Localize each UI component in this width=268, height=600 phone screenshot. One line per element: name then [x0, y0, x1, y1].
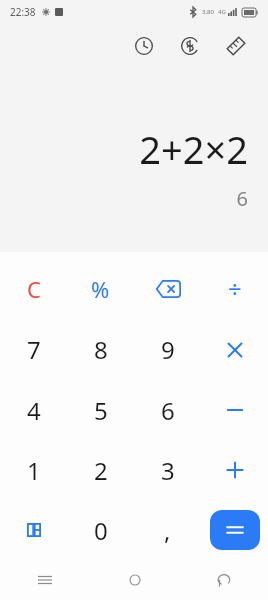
- staticText: 2+2×2: [0, 123, 248, 175]
- button[interactable]: 0: [67, 500, 134, 560]
- button[interactable]: [210, 510, 260, 550]
- button[interactable]: ,: [134, 500, 201, 560]
- button[interactable]: 6: [134, 380, 201, 440]
- button[interactable]: History: [126, 28, 162, 64]
- button[interactable]: 5: [67, 380, 134, 440]
- staticText: 0: [94, 514, 108, 547]
- staticText: 3: [161, 454, 175, 487]
- staticText: 3,80: [202, 8, 214, 16]
- staticText: ,: [164, 514, 171, 547]
- button[interactable]: Scientific mode: [0, 500, 67, 560]
- button[interactable]: Unit converter: [218, 28, 254, 64]
- button[interactable]: Backspace: [134, 258, 201, 319]
- staticText: 8: [94, 333, 108, 366]
- button[interactable]: Minus: [201, 380, 268, 440]
- button[interactable]: Home: [90, 560, 179, 600]
- button[interactable]: ÷: [201, 258, 268, 319]
- button[interactable]: 4: [0, 380, 67, 440]
- button[interactable]: 7: [0, 319, 67, 380]
- staticText: 5: [94, 394, 108, 427]
- staticText: 22:38: [10, 5, 36, 19]
- staticText: 7: [27, 333, 41, 366]
- button[interactable]: 2: [67, 440, 134, 500]
- button[interactable]: 8: [67, 319, 134, 380]
- button[interactable]: 3: [134, 440, 201, 500]
- staticText: 1: [27, 454, 41, 487]
- staticText: C: [27, 274, 41, 304]
- staticText: ÷: [228, 272, 242, 305]
- staticText: 6: [0, 185, 248, 212]
- button[interactable]: Back: [179, 560, 268, 600]
- button[interactable]: Multiply: [201, 319, 268, 380]
- button[interactable]: 9: [134, 319, 201, 380]
- button[interactable]: 1: [0, 440, 67, 500]
- staticText: 2: [94, 454, 108, 487]
- staticText: 6: [161, 394, 175, 427]
- button[interactable]: Recents: [0, 560, 90, 600]
- staticText: 4G: [218, 8, 226, 16]
- button[interactable]: C: [0, 258, 67, 319]
- staticText: 9: [161, 333, 175, 366]
- staticText: 4: [27, 394, 41, 427]
- button[interactable]: %: [67, 258, 134, 319]
- button[interactable]: Currency converter: [172, 28, 208, 64]
- button[interactable]: Plus: [201, 440, 268, 500]
- staticText: %: [91, 274, 110, 304]
